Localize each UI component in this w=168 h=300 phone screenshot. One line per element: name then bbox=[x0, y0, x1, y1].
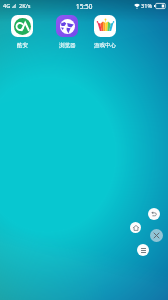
staticText: 4G bbox=[3, 2, 11, 10]
button[interactable]: 浏览器 bbox=[46, 15, 88, 49]
staticText: 15:50 bbox=[76, 2, 93, 11]
staticText: 31% bbox=[141, 2, 153, 10]
button[interactable]: Close bbox=[150, 229, 163, 242]
button[interactable]: 游戏中心 bbox=[84, 15, 126, 49]
button[interactable]: Back bbox=[148, 208, 160, 220]
staticText: 2K/s bbox=[19, 2, 31, 10]
button[interactable]: Menu bbox=[137, 244, 149, 256]
button[interactable]: 酷安 bbox=[1, 15, 43, 49]
staticText: 浏览器 bbox=[59, 42, 76, 49]
staticText: 酷安 bbox=[17, 42, 28, 49]
staticText: 游戏中心 bbox=[94, 42, 116, 49]
button[interactable]: Home bbox=[130, 222, 141, 233]
